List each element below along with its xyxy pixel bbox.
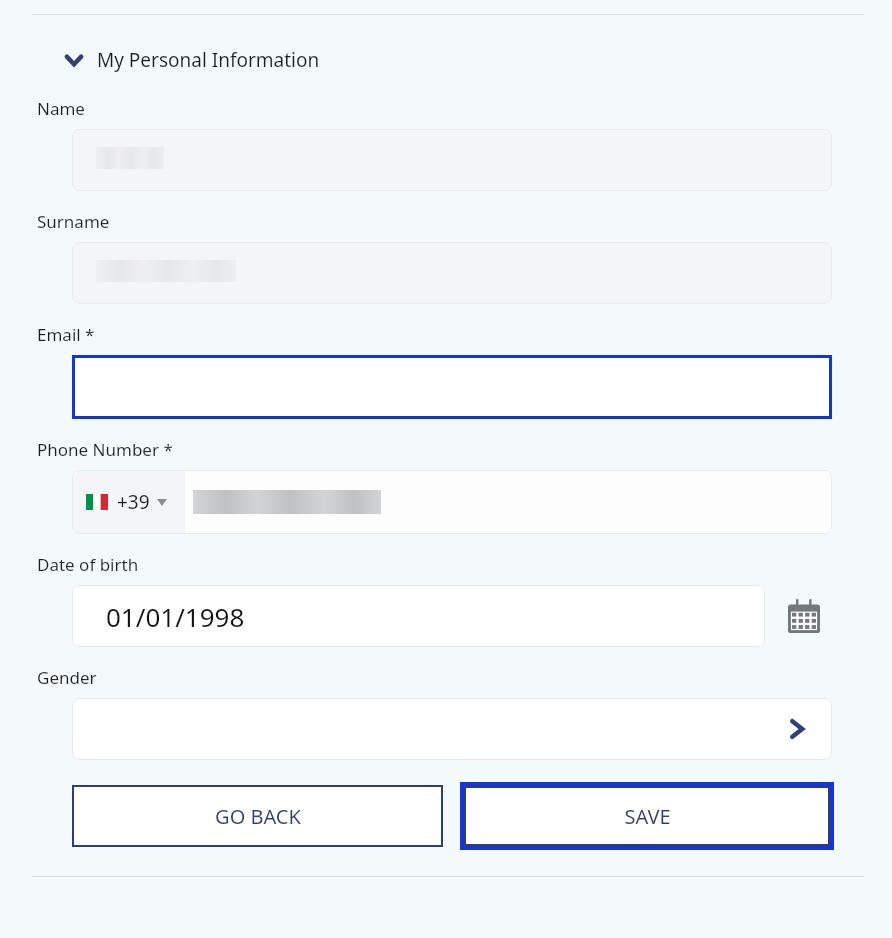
button[interactable]: Select country code [72,470,185,534]
staticText: Phone Number * [37,438,173,461]
button[interactable]: Select gender [72,698,832,760]
button[interactable]: 01/01/1998 [72,585,765,647]
button[interactable] [72,242,832,304]
staticText: Date of birth [37,553,139,576]
staticText: Gender [37,666,97,689]
button[interactable]: SAVE [460,782,834,850]
staticText: My Personal Information [97,47,320,73]
button[interactable]: Open calendar [784,595,824,637]
staticText: Name [37,97,85,120]
staticText: Email * [37,323,95,346]
staticText: +39 [117,489,150,515]
staticText: GO BACK [215,803,301,830]
button[interactable]: My Personal Information [62,45,328,75]
staticText: Surname [37,210,110,233]
staticText: SAVE [624,803,671,830]
button[interactable]: GO BACK [72,785,443,847]
staticText: 01/01/1998 [106,599,245,634]
button[interactable] [72,355,832,419]
